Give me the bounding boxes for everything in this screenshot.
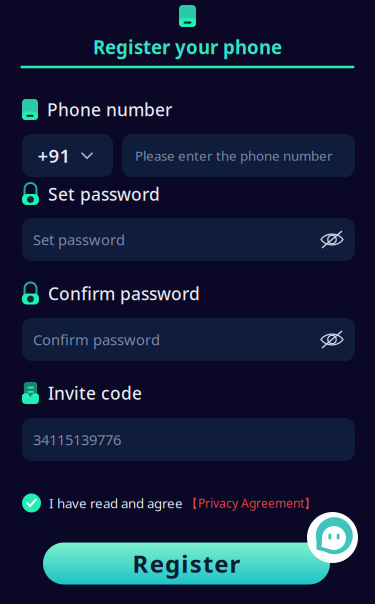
staticText: 34115139776	[33, 430, 121, 449]
staticText: I have read and agree	[49, 494, 183, 512]
button[interactable]: Please enter the phone number	[122, 134, 355, 177]
button[interactable]: Set password	[22, 218, 355, 261]
staticText: Invite code	[48, 381, 142, 404]
staticText: Please enter the phone number	[135, 147, 333, 164]
button[interactable]: Agree to privacy agreement	[22, 493, 41, 512]
staticText: +91	[37, 143, 70, 168]
staticText: Set password	[33, 230, 125, 249]
staticText: Confirm password	[33, 330, 160, 349]
button[interactable]: +91	[22, 134, 113, 177]
button[interactable]: Customer service chat	[307, 512, 358, 563]
staticText: Register your phone	[93, 35, 282, 59]
button[interactable]: Register	[43, 542, 330, 584]
staticText: 【Privacy Agreement】	[186, 495, 316, 511]
button[interactable]: 34115139776	[22, 418, 355, 461]
staticText: Register	[132, 548, 241, 579]
staticText: Phone number	[47, 98, 172, 121]
staticText: Set password	[48, 182, 160, 205]
button[interactable]: Confirm password	[22, 318, 355, 361]
button[interactable]: 【Privacy Agreement】	[186, 495, 316, 511]
staticText: Confirm password	[48, 282, 200, 305]
